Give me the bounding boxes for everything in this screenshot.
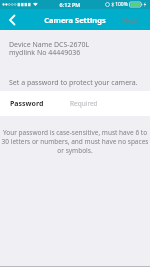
button[interactable] <box>4 12 20 28</box>
staticText: 6:12 PM <box>56 1 84 8</box>
staticText: Your password is case-sensitive, must ha… <box>0 128 150 155</box>
button[interactable]: Next <box>122 15 139 25</box>
staticText: Next <box>122 15 139 25</box>
staticText: Password <box>10 99 44 109</box>
staticText: Set a password to protect your camera. <box>9 78 138 88</box>
staticText: 100% <box>115 1 128 8</box>
staticText: mydlink No 44449036 <box>9 48 81 58</box>
staticText: Device Name DCS-2670L <box>9 40 90 50</box>
staticText: Required <box>70 99 98 108</box>
staticText: Camera Settings <box>0 15 150 25</box>
button[interactable]: Password <box>0 91 150 116</box>
